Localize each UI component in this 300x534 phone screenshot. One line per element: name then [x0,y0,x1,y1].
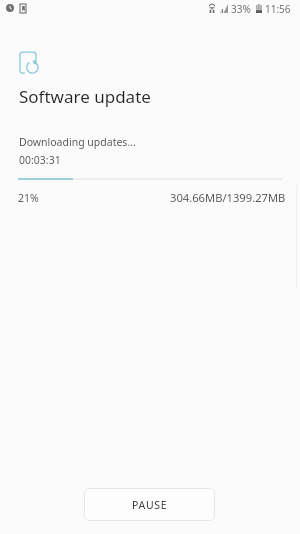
staticText: Software update [19,85,151,108]
staticText: 00:03:31 [19,153,61,167]
button[interactable]: PAUSE [84,488,215,521]
other: Software update [20,52,38,73]
staticText: PAUSE [132,498,168,512]
staticText: Downloading updates... [19,135,136,149]
staticText: 21% [18,191,39,205]
staticText: 304.66MB/1399.27MB [170,190,286,205]
staticText: 33% [231,2,251,16]
staticText: 11:56 [265,2,291,16]
